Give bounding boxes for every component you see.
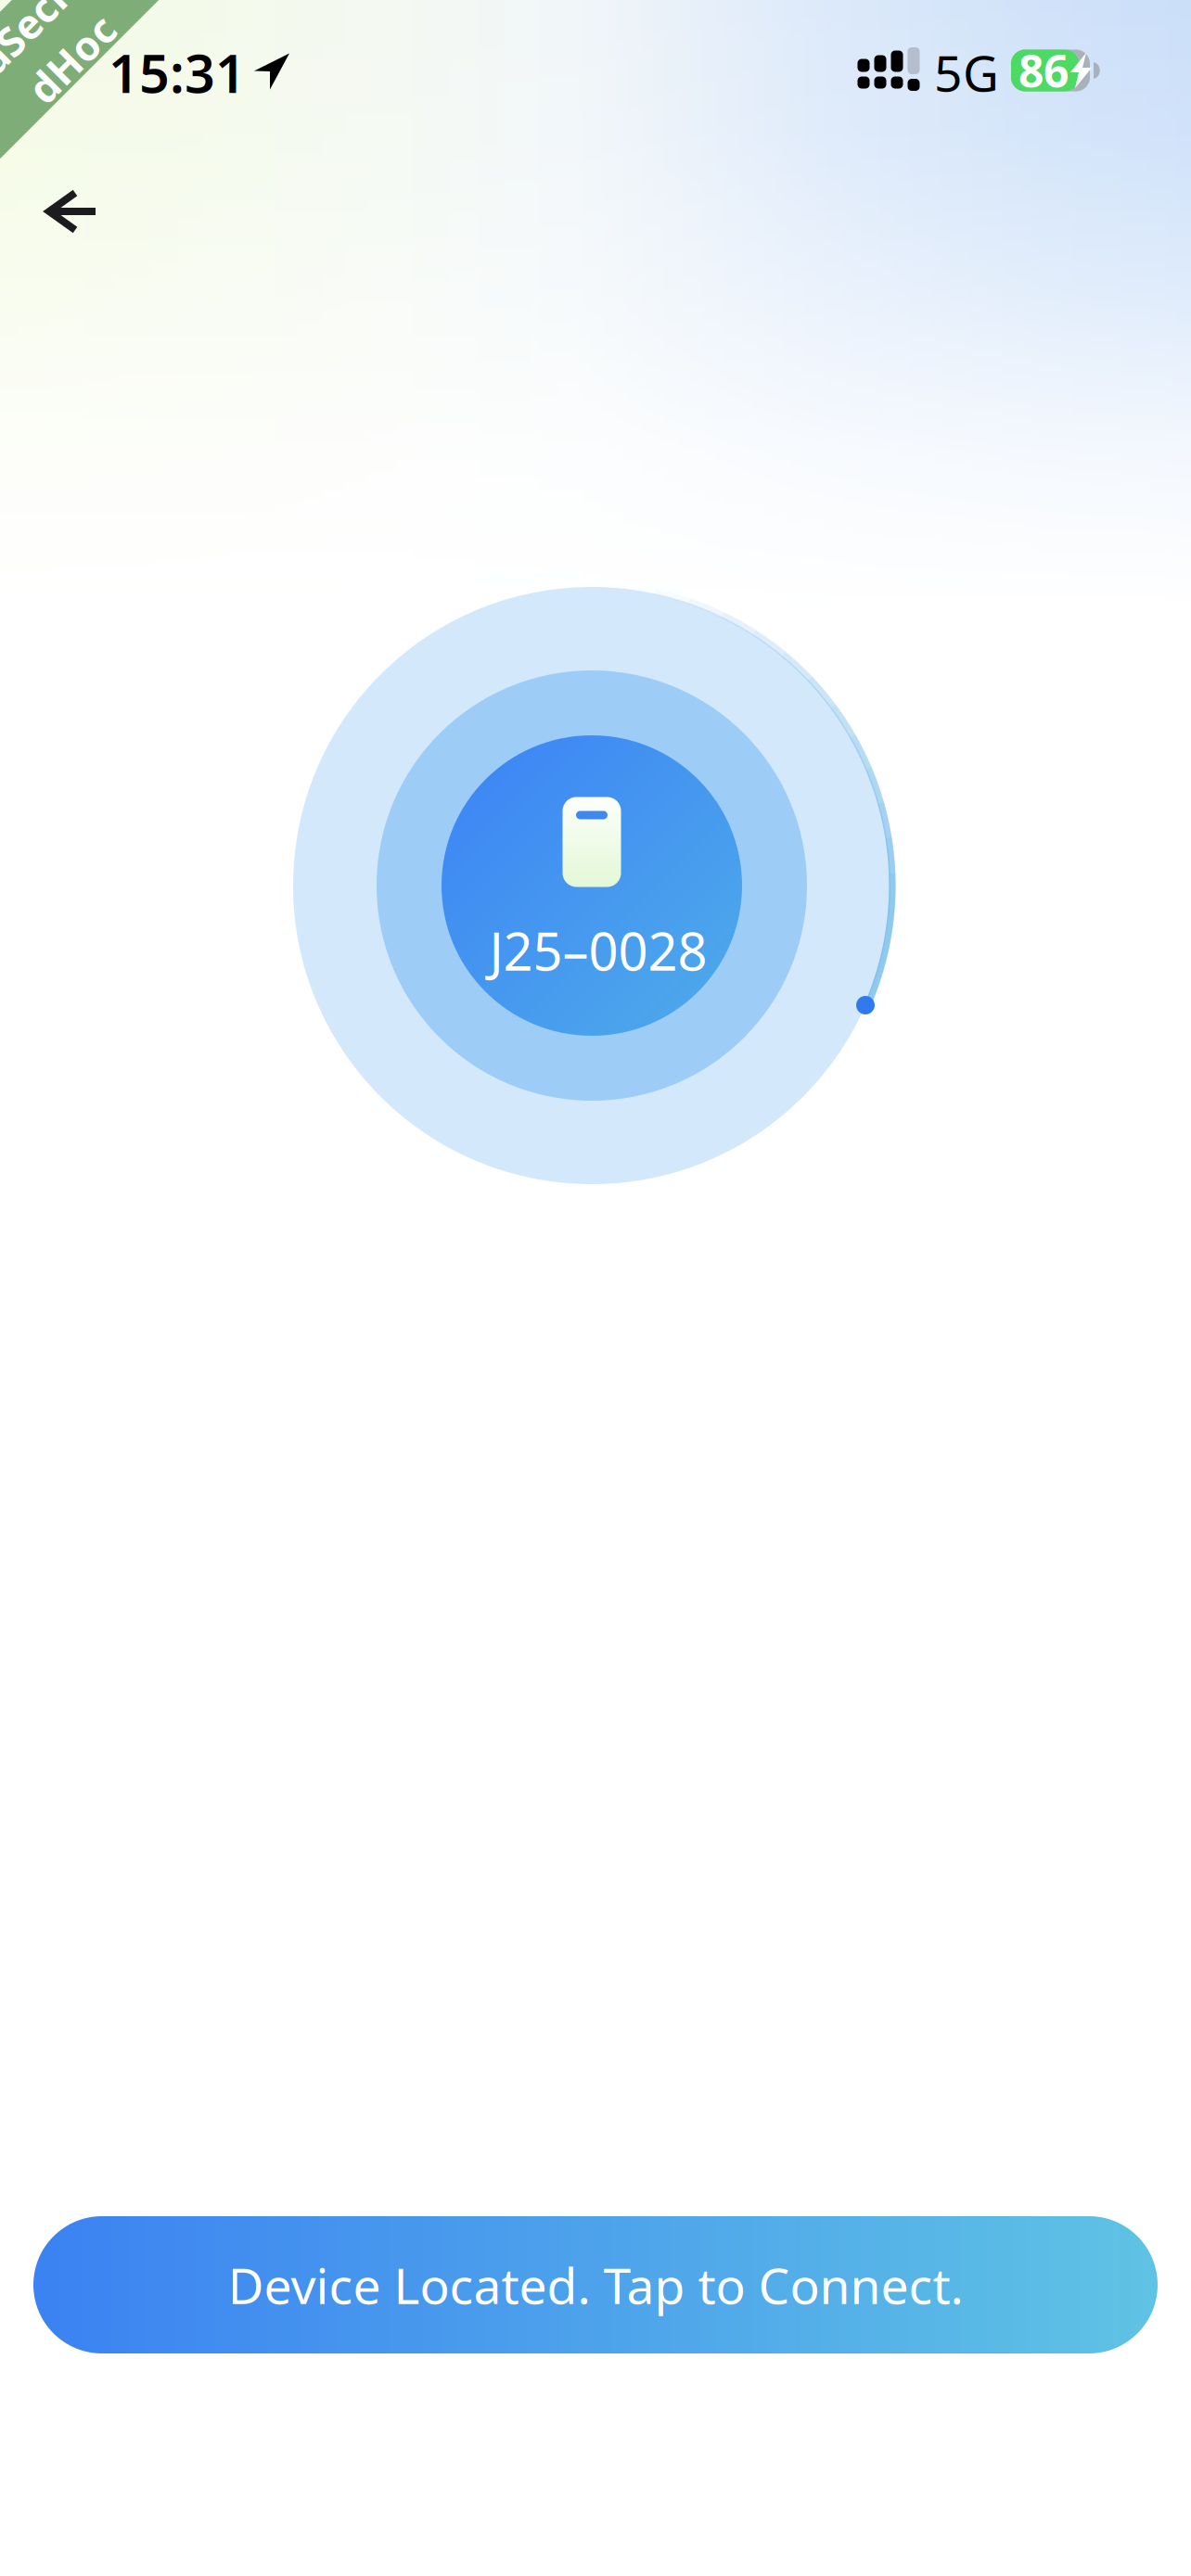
staticText: oraSecrt: [0, 0, 114, 45]
staticText: dHoc: [0, 47, 104, 101]
staticText: 5G: [934, 40, 999, 105]
staticText: 15:31: [109, 37, 246, 108]
button[interactable]: Device Located. Tap to Connect.: [33, 2216, 1158, 2353]
staticText: J25–0028: [489, 916, 707, 985]
staticText: Device Located. Tap to Connect.: [228, 2252, 963, 2318]
staticText: 86: [1018, 41, 1069, 100]
button[interactable]: Back: [0, 143, 135, 250]
